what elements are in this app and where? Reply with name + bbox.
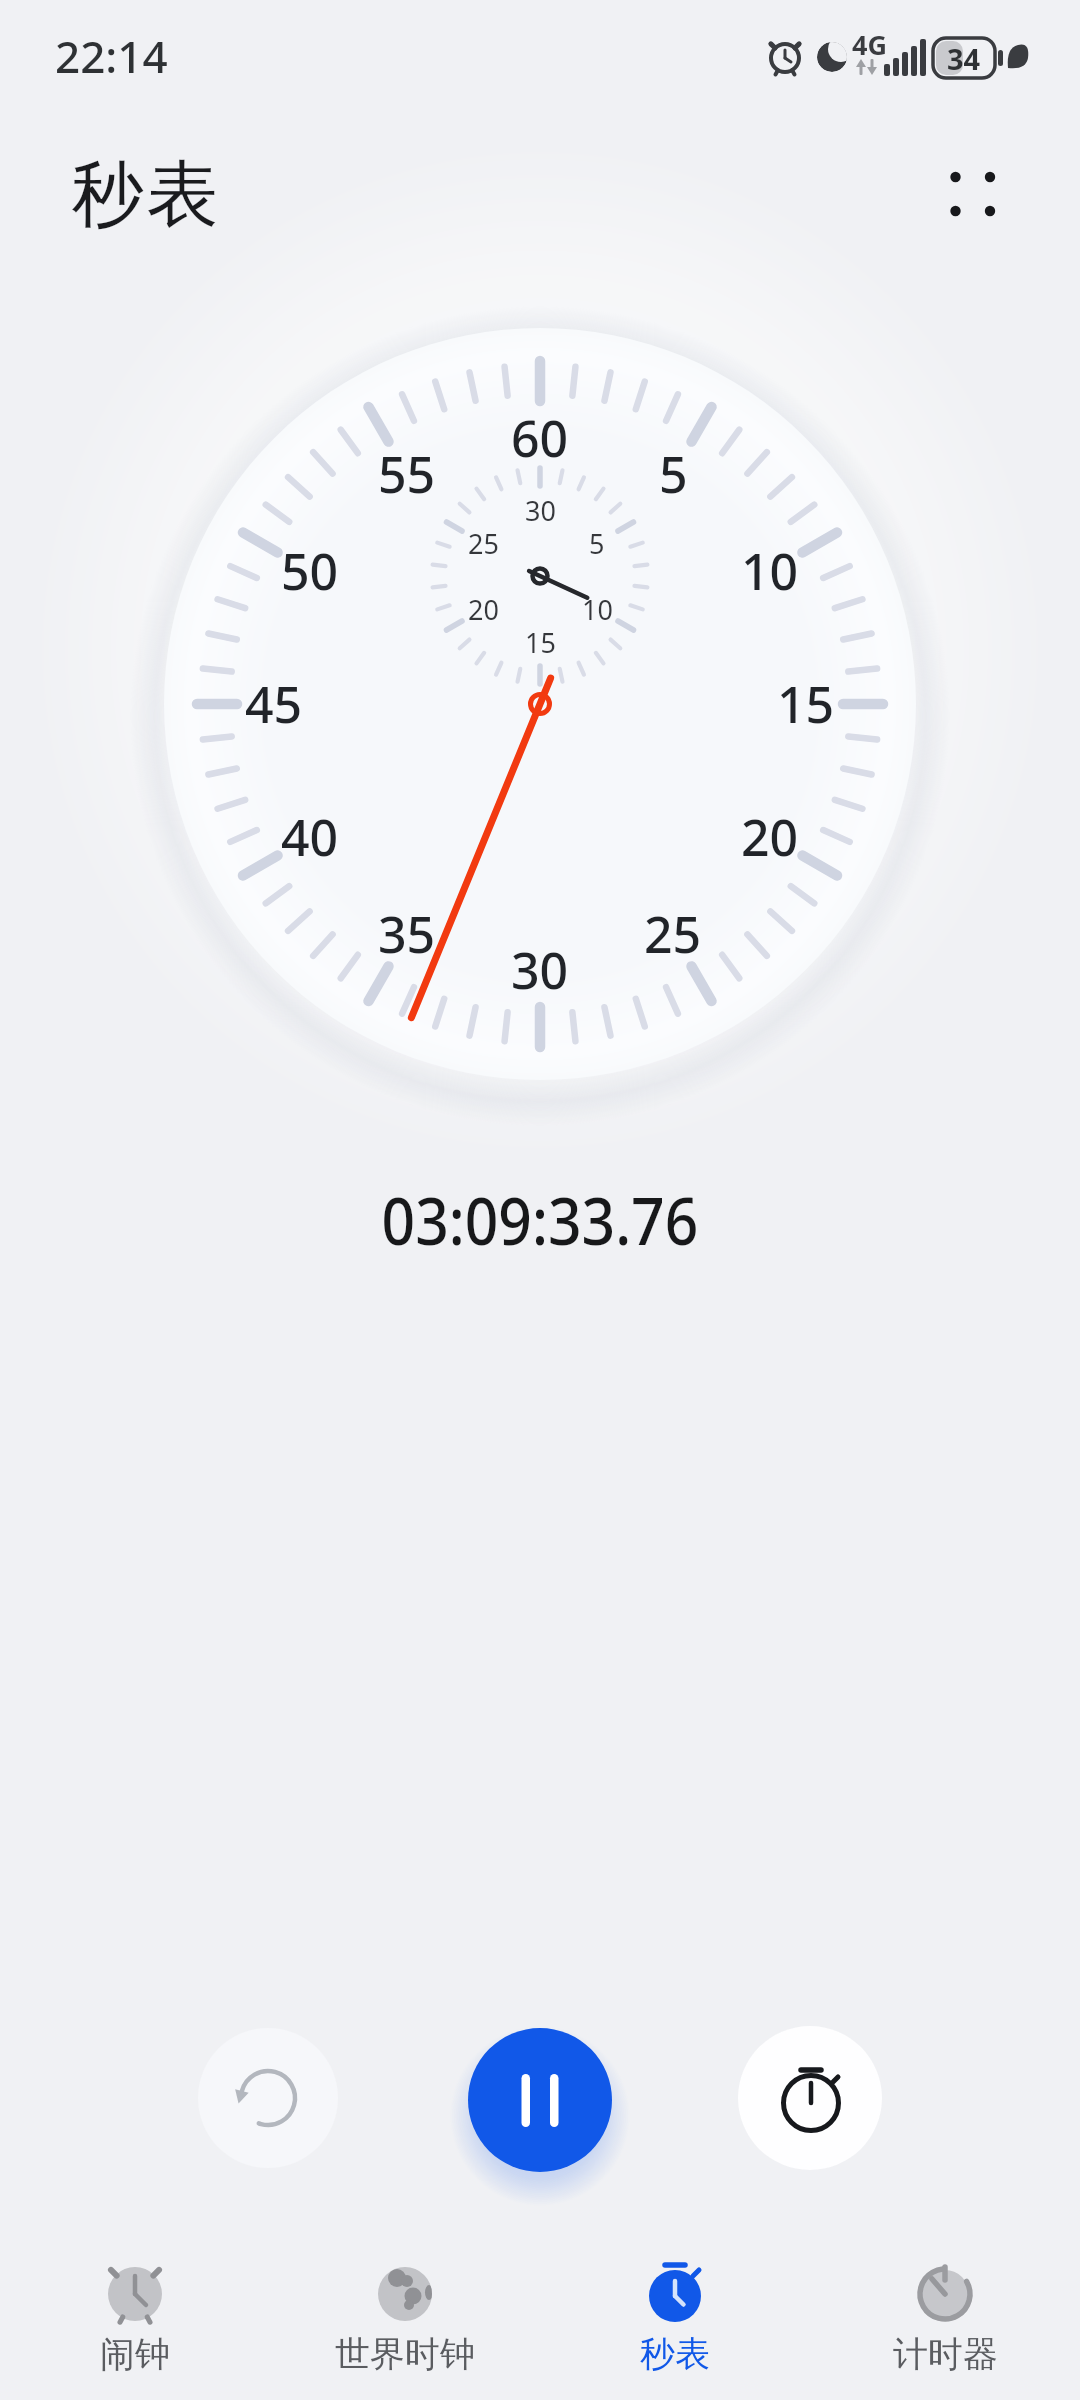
staticText: 30	[511, 936, 569, 1004]
staticText: 22:14	[55, 26, 168, 86]
staticText: 15	[777, 670, 835, 738]
staticText: 15	[525, 624, 556, 661]
staticText: 5	[589, 525, 605, 562]
staticText: 闹钟	[100, 2332, 170, 2376]
button[interactable]	[468, 2028, 612, 2172]
staticText: 10	[741, 537, 799, 605]
staticText: 30	[525, 492, 556, 529]
button[interactable]	[935, 158, 1011, 234]
button[interactable]	[198, 2028, 338, 2168]
staticText: 20	[741, 803, 799, 871]
staticText: 秒表	[640, 2332, 710, 2376]
staticText: 计时器	[893, 2332, 998, 2376]
staticText: 45	[245, 670, 303, 738]
button[interactable]: 秒表	[565, 2244, 785, 2394]
button[interactable]: 世界时钟	[295, 2244, 515, 2394]
staticText: 03:09:33.76	[382, 1174, 698, 1264]
staticText: 10	[582, 591, 613, 628]
staticText: 55	[378, 440, 436, 508]
staticText: 34	[947, 39, 981, 78]
staticText: 世界时钟	[335, 2332, 475, 2376]
staticText: 25	[468, 525, 499, 562]
staticText: 50	[281, 537, 339, 605]
button[interactable]	[738, 2026, 882, 2170]
staticText: 4G	[852, 26, 887, 63]
staticText: 秒表	[70, 150, 220, 241]
button[interactable]: 闹钟	[25, 2244, 245, 2394]
staticText: 35	[378, 900, 436, 968]
staticText: 60	[511, 404, 569, 472]
staticText: 5	[659, 440, 688, 508]
staticText: 40	[281, 803, 339, 871]
button[interactable]: 计时器	[835, 2244, 1055, 2394]
staticText: 25	[644, 900, 702, 968]
staticText: 20	[468, 591, 499, 628]
